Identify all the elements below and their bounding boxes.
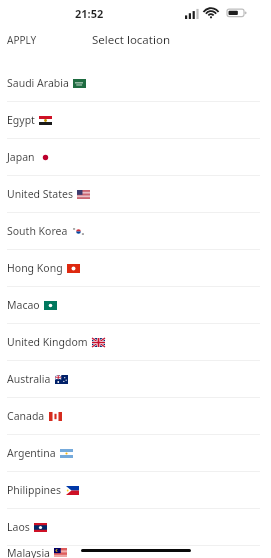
staticText: Argentina [7,446,56,460]
button[interactable]: Laos [0,509,271,546]
button[interactable]: Argentina [0,435,271,472]
staticText: Macao [7,298,40,312]
staticText: APPLY [7,33,37,47]
staticText: Malaysia [7,546,50,558]
button[interactable]: Australia [0,361,271,398]
button[interactable]: Philippines [0,472,271,509]
button[interactable]: Canada [0,398,271,435]
staticText: Laos [7,520,30,534]
staticText: Canada [7,409,45,423]
button[interactable]: APPLY [0,29,44,51]
staticText: Australia [7,372,51,386]
staticText: United Kingdom [7,335,88,349]
button[interactable]: United Kingdom [0,324,271,361]
staticText: Philippines [7,483,62,497]
button[interactable]: Malaysia [0,546,271,558]
staticText: Japan [7,150,35,164]
staticText: Select location [92,32,170,48]
staticText: Hong Kong [7,261,63,275]
button[interactable]: Macao [0,287,271,324]
staticText: United States [7,187,73,201]
button[interactable]: Saudi Arabia [0,65,271,102]
staticText: 21:52 [75,6,104,21]
staticText: South Korea [7,224,68,238]
button[interactable]: Japan [0,139,271,176]
staticText: Egypt [7,113,35,127]
button[interactable]: Egypt [0,102,271,139]
staticText: Saudi Arabia [7,76,69,90]
button[interactable]: United States [0,176,271,213]
button[interactable]: Hong Kong [0,250,271,287]
button[interactable]: South Korea [0,213,271,250]
